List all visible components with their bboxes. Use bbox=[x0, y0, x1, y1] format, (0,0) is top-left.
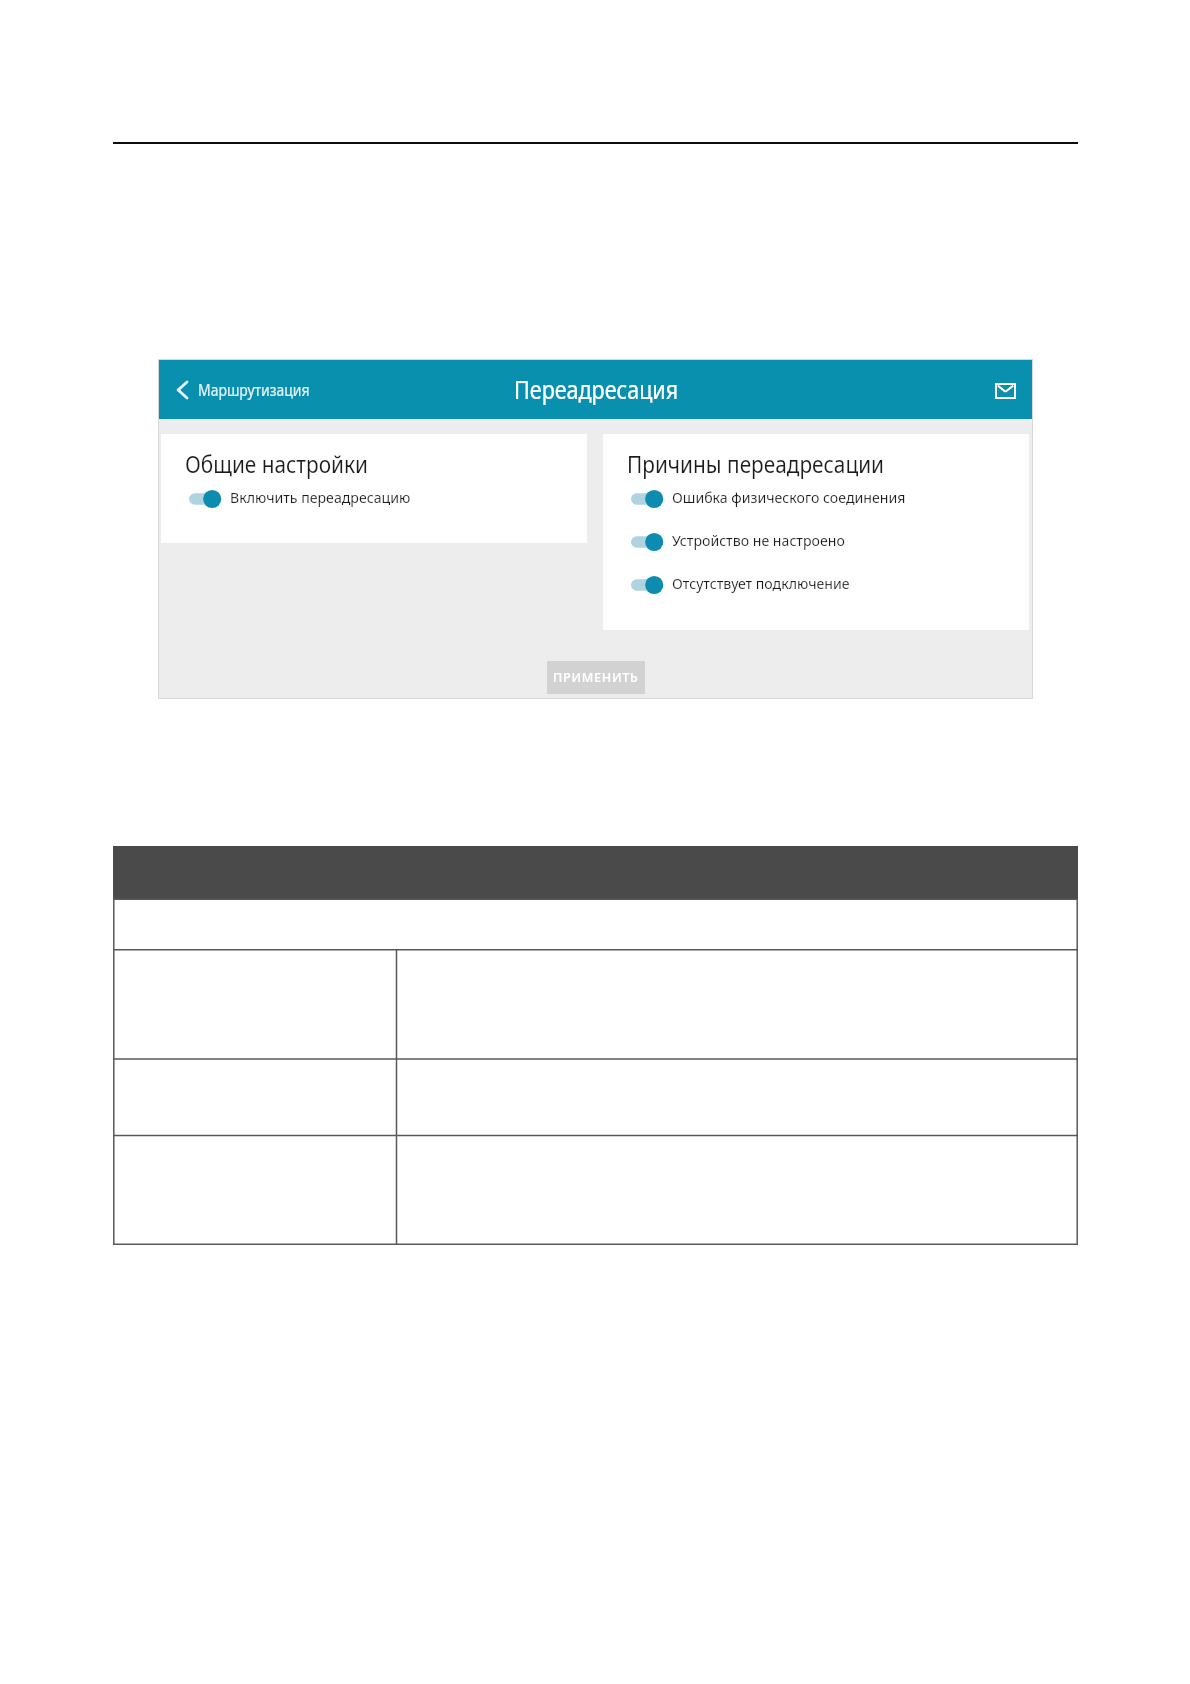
staticText: Маршрутизация bbox=[198, 379, 310, 400]
button[interactable]: ПРИМЕНИТЬ bbox=[547, 661, 645, 694]
button[interactable]: Отсутствует подключение bbox=[631, 572, 858, 594]
staticText: Причины переадресации bbox=[627, 448, 884, 480]
button[interactable]: Маршрутизация bbox=[175, 373, 322, 406]
staticText: ПРИМЕНИТЬ bbox=[553, 669, 639, 686]
staticText: Ошибка физического соединения bbox=[672, 487, 906, 507]
staticText: Включить переадресацию bbox=[230, 487, 410, 507]
button[interactable]: Устройство не настроено bbox=[631, 529, 853, 551]
button[interactable]: Включить переадресацию bbox=[189, 486, 419, 508]
staticText: Отсутствует подключение bbox=[672, 573, 850, 593]
button[interactable]: Ошибка физического соединения bbox=[631, 486, 917, 508]
button[interactable]: Messages bbox=[987, 371, 1023, 407]
staticText: Устройство не настроено bbox=[672, 530, 845, 550]
staticText: Переадресация bbox=[514, 372, 678, 406]
staticText: Общие настройки bbox=[185, 448, 368, 480]
